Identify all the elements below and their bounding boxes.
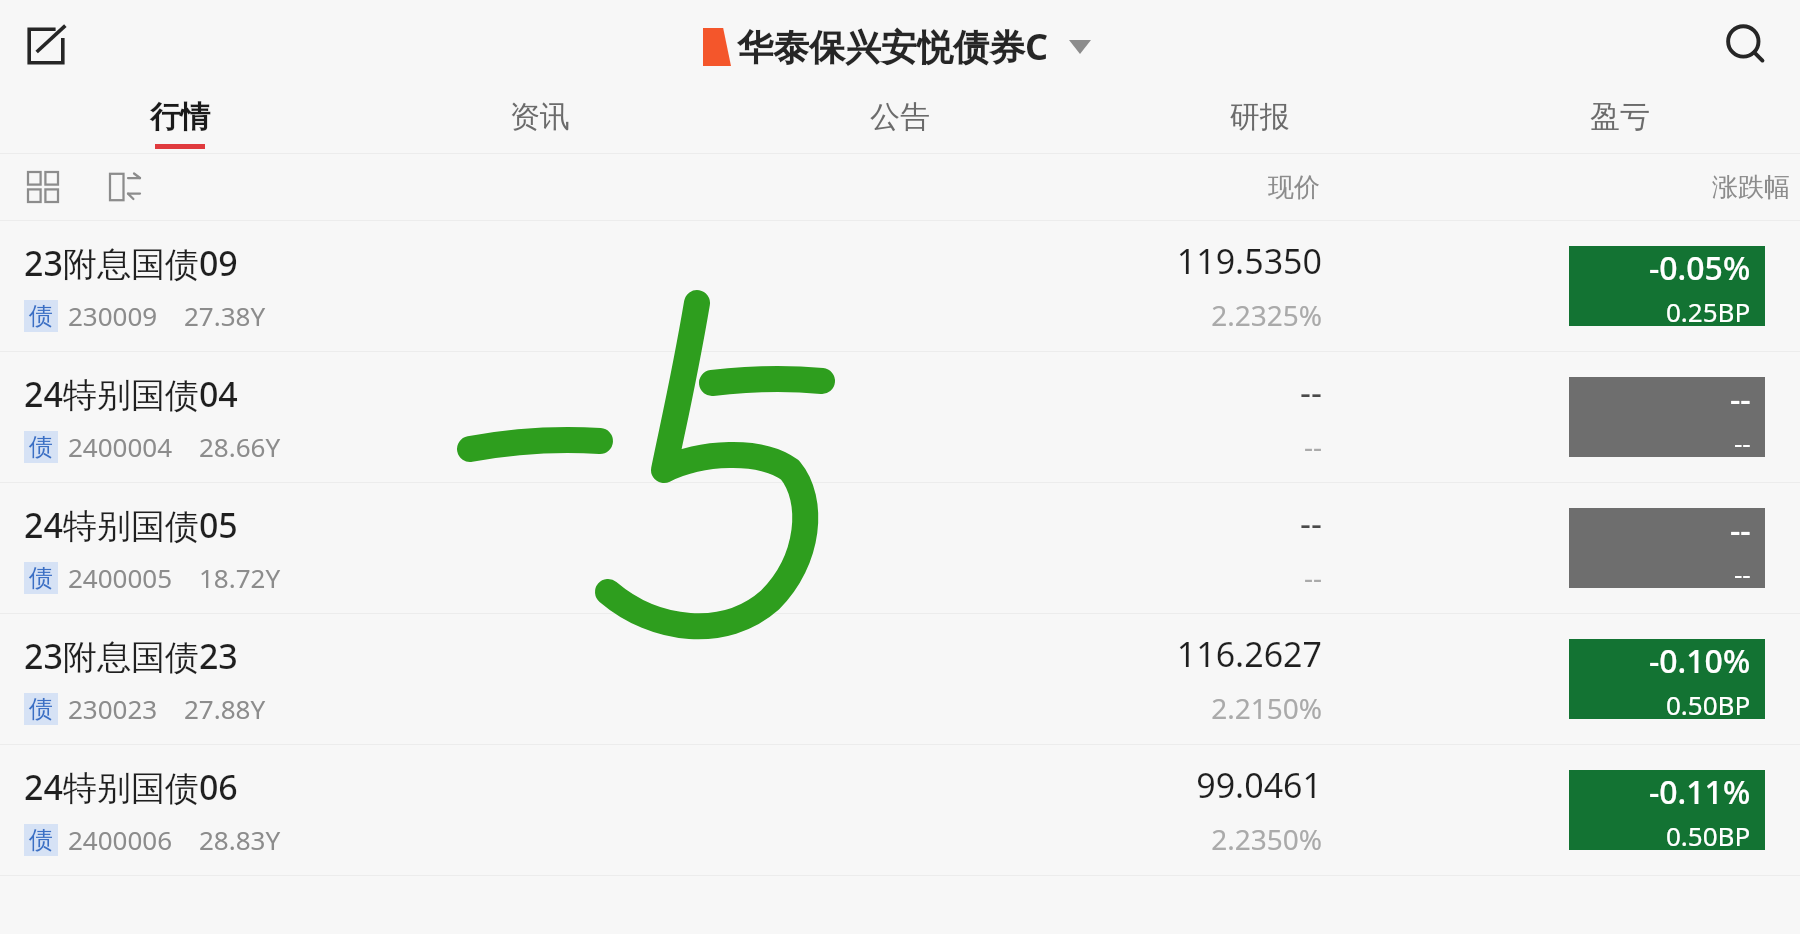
staticText: 债 (29, 825, 53, 855)
button[interactable]: 24特别国债06 (0, 744, 1800, 875)
button[interactable]: Search (1712, 11, 1782, 81)
staticText: 23附息国债23 (24, 633, 238, 679)
staticText: 盈亏 (1590, 98, 1650, 136)
staticText: 2.2350% (1211, 820, 1322, 858)
staticText: 2400006 (68, 822, 173, 857)
staticText: -0.10% (1649, 639, 1751, 683)
staticText: -- (1300, 369, 1322, 415)
staticText: 2.2150% (1211, 689, 1322, 727)
staticText: 2400005 (68, 560, 173, 595)
staticText: 债 (29, 694, 53, 724)
staticText: 债 (29, 432, 53, 462)
button[interactable]: Select fund (1063, 30, 1097, 64)
button[interactable]: Sort (102, 164, 148, 210)
staticText: 资讯 (510, 98, 570, 136)
staticText: -0.05% (1649, 246, 1751, 290)
staticText: 2400004 (68, 429, 173, 464)
staticText: 230009 (68, 298, 158, 333)
staticText: 230023 (68, 691, 158, 726)
button[interactable]: 23附息国债23 (0, 613, 1800, 744)
staticText: -- (1300, 500, 1322, 546)
staticText: -0.11% (1649, 770, 1751, 814)
staticText: 27.38Y (184, 298, 266, 333)
staticText: 公告 (870, 98, 930, 136)
staticText: 0.50BP (1666, 687, 1751, 719)
staticText: 119.5350 (1176, 238, 1322, 284)
staticText: 行情 (150, 98, 210, 136)
staticText: 28.83Y (199, 822, 281, 857)
button[interactable]: Grid view (20, 164, 66, 210)
staticText: -- (1730, 508, 1751, 552)
staticText: 24特别国债06 (24, 764, 238, 810)
staticText: -- (1303, 558, 1322, 596)
staticText: 涨跌幅 (1712, 171, 1790, 204)
button[interactable]: 23附息国债09 (0, 220, 1800, 351)
staticText: 华泰保兴安悦债券C (737, 22, 1049, 71)
button[interactable]: 资讯 (360, 92, 720, 154)
staticText: 24特别国债04 (24, 371, 238, 417)
button[interactable]: Edit (14, 14, 78, 78)
button[interactable]: 行情 (0, 92, 360, 154)
staticText: 23附息国债09 (24, 240, 238, 286)
staticText: -- (1730, 377, 1751, 421)
staticText: 2.2325% (1211, 296, 1322, 334)
staticText: 现价 (1268, 171, 1320, 204)
button[interactable]: 24特别国债05 (0, 482, 1800, 613)
button[interactable]: 研报 (1080, 92, 1440, 154)
button[interactable]: 24特别国债04 (0, 351, 1800, 482)
staticText: 0.50BP (1666, 818, 1751, 850)
staticText: 债 (29, 563, 53, 593)
staticText: 116.2627 (1176, 631, 1322, 677)
staticText: 0.25BP (1666, 294, 1751, 326)
staticText: 27.88Y (184, 691, 266, 726)
staticText: 18.72Y (199, 560, 281, 595)
staticText: 债 (29, 301, 53, 331)
button[interactable]: 公告 (720, 92, 1080, 154)
staticText: -- (1734, 425, 1751, 457)
staticText: 研报 (1230, 98, 1290, 136)
staticText: 24特别国债05 (24, 502, 238, 548)
staticText: -- (1303, 427, 1322, 465)
button[interactable]: 盈亏 (1440, 92, 1800, 154)
staticText: -- (1734, 556, 1751, 588)
staticText: 28.66Y (199, 429, 281, 464)
staticText: 99.0461 (1196, 762, 1322, 808)
